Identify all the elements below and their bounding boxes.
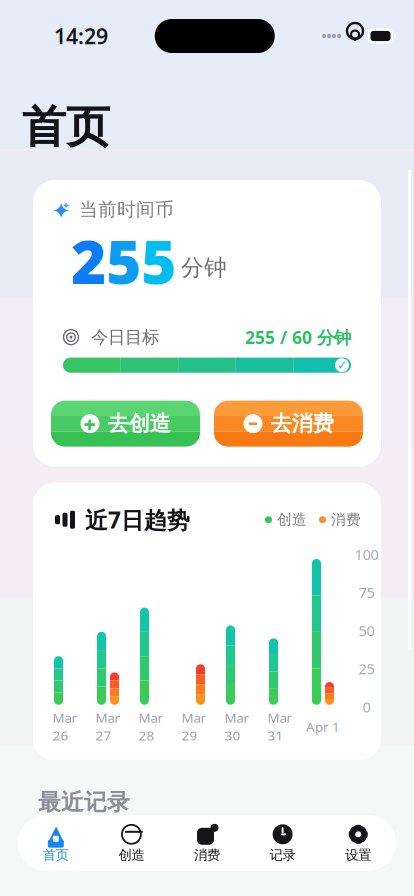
staticText: Apr 1 [306, 718, 340, 735]
staticText: Mar 28 [138, 709, 163, 744]
button[interactable]: + [51, 401, 200, 447]
staticText: 14:29 [54, 22, 108, 50]
button[interactable]: 记录 [245, 818, 320, 868]
staticText: 近7日趋势 [85, 505, 190, 535]
staticText: 去创造 [107, 411, 170, 437]
staticText: 首页 [22, 100, 110, 154]
staticText: 5 [141, 221, 176, 301]
staticText: 记录 [270, 847, 296, 863]
staticText: 75 [358, 583, 374, 602]
staticText: 0 [362, 697, 370, 716]
staticText: 5 [106, 221, 141, 301]
staticText: 今日目标 [91, 326, 159, 348]
staticText: ▲ [48, 821, 63, 844]
staticText: + [83, 409, 96, 438]
staticText: 去消费 [270, 411, 333, 437]
staticText: 最近记录 [38, 788, 130, 816]
staticText: 创造 [118, 847, 144, 863]
staticText: 设置 [345, 847, 371, 863]
button[interactable]: 去消费 [214, 401, 363, 447]
staticText: ✦ [61, 199, 70, 212]
staticText: ✦ [51, 198, 70, 224]
button[interactable]: 消费 [169, 818, 245, 868]
button[interactable]: ▲ [18, 818, 94, 868]
staticText: 25 [358, 659, 374, 678]
staticText: Mar 27 [95, 709, 120, 744]
staticText: 分钟 [181, 254, 227, 282]
staticText: 首页 [43, 847, 69, 863]
button[interactable]: 创造 [94, 818, 169, 868]
staticText: Mar 30 [224, 709, 249, 744]
staticText: 255 / 60 分钟 [245, 326, 351, 349]
staticText: Mar 29 [181, 709, 206, 744]
staticText: Mar 26 [52, 709, 77, 744]
button[interactable]: 设置 [320, 818, 396, 868]
staticText: 消费 [331, 511, 361, 529]
staticText: Mar 31 [267, 709, 292, 744]
staticText: 当前时间币 [79, 198, 174, 221]
staticText: 消费 [194, 847, 220, 863]
staticText: •••• [321, 27, 341, 45]
staticText: 2 [71, 221, 106, 301]
staticText: 创造 [277, 511, 307, 529]
staticText: ✓ [337, 358, 347, 372]
staticText: 50 [358, 621, 374, 640]
staticText: 100 [354, 544, 378, 564]
